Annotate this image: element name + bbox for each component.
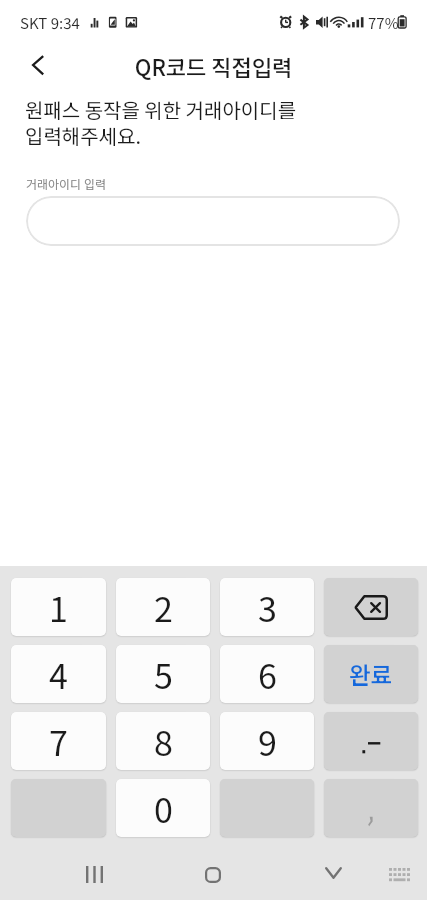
staticText: 1 (49, 583, 68, 632)
staticText: 4 (49, 650, 68, 699)
staticText: 거래아이디 입력 (26, 175, 106, 192)
staticText: 완료 (349, 657, 393, 691)
button[interactable]: Dot dash (324, 712, 418, 770)
staticText: 3 (258, 583, 277, 632)
button[interactable]: 9 (220, 712, 314, 770)
button[interactable]: 0 (116, 779, 210, 837)
button[interactable]: Recents (74, 854, 114, 894)
button[interactable]: 1 (11, 578, 106, 636)
staticText: 77% (368, 12, 399, 34)
button[interactable]: Back (20, 47, 56, 83)
button[interactable]: 6 (220, 645, 314, 703)
button[interactable]: 완료 (324, 645, 418, 703)
staticText: SKT 9:34 (20, 12, 80, 34)
staticText: 7 (49, 717, 68, 766)
button[interactable]: Backspace (324, 578, 418, 636)
staticText: QR코드 직접입력 (0, 50, 427, 82)
button[interactable]: 7 (11, 712, 106, 770)
staticText: 2 (154, 583, 173, 632)
button[interactable] (26, 196, 400, 246)
staticText: 0 (154, 784, 173, 833)
staticText: 6 (258, 650, 277, 699)
button[interactable]: 5 (116, 645, 210, 703)
button[interactable]: 8 (116, 712, 210, 770)
button[interactable]: Home (193, 855, 233, 895)
staticText: 원패스 동작을 위한 거래아이디를 입력해주세요. (25, 95, 297, 150)
staticText: 5 (154, 650, 173, 699)
staticText: 8 (154, 717, 173, 766)
button[interactable]: 4 (11, 645, 106, 703)
button[interactable]: Comma (324, 779, 418, 837)
button[interactable]: 2 (116, 578, 210, 636)
staticText: 9 (258, 717, 277, 766)
button[interactable]: Keyboard (381, 857, 417, 893)
button[interactable]: 3 (220, 578, 314, 636)
button[interactable]: Hide keyboard (313, 853, 353, 893)
